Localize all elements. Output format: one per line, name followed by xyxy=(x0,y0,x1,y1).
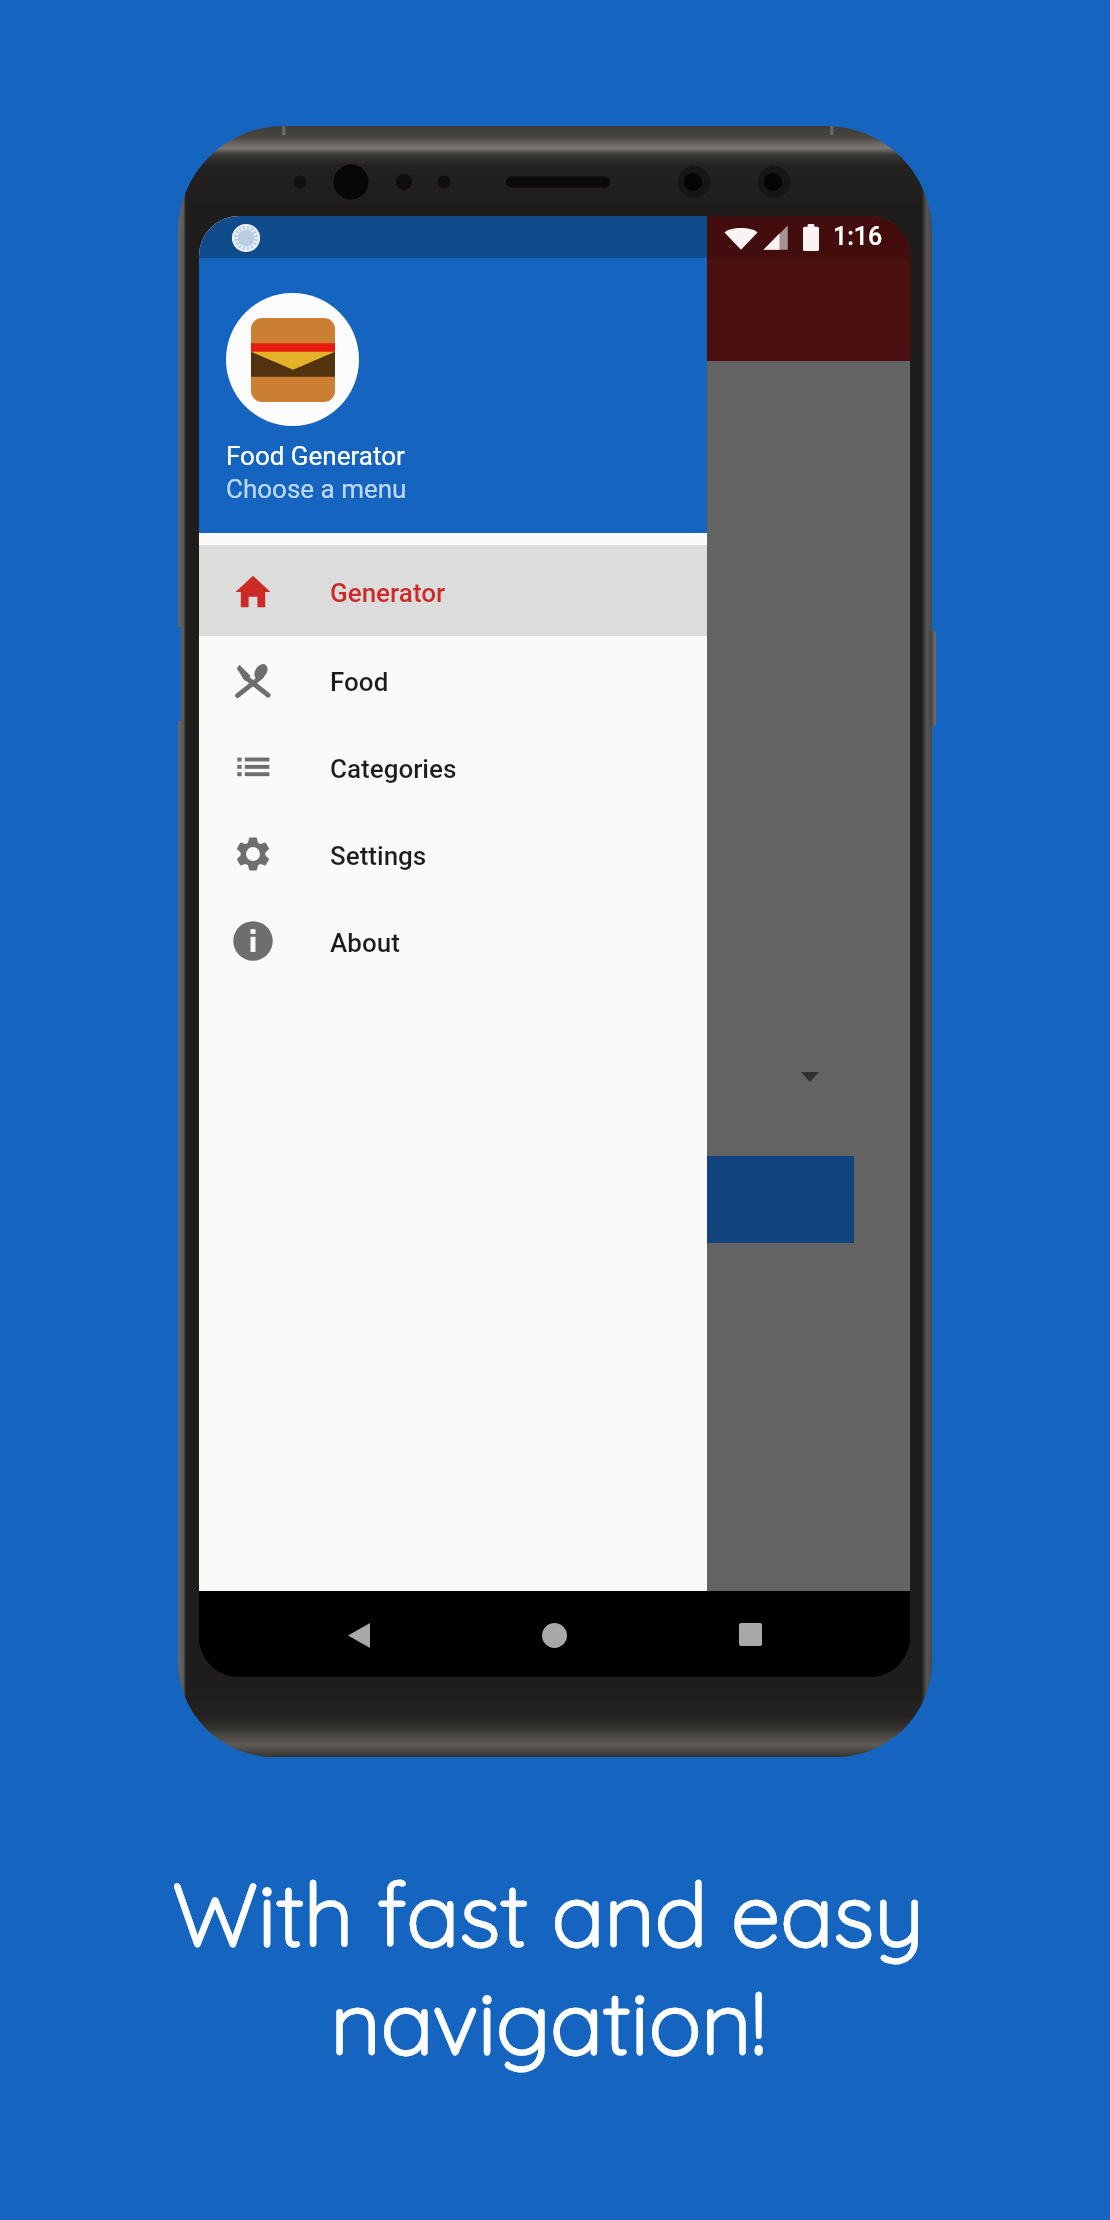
staticText: Categories xyxy=(330,754,457,784)
button[interactable]: About xyxy=(199,897,707,984)
staticText: 1:16 xyxy=(833,222,883,251)
button[interactable]: Home xyxy=(519,1599,589,1671)
staticText: Food xyxy=(330,667,389,697)
button[interactable]: Generator xyxy=(199,545,707,636)
staticText: With fast and easy navigation! xyxy=(172,1858,924,2076)
staticText: Settings xyxy=(330,841,427,871)
button[interactable]: Food xyxy=(199,636,707,723)
staticText: About xyxy=(330,928,400,958)
button[interactable]: Categories xyxy=(199,723,707,810)
button[interactable]: Recents xyxy=(715,1598,785,1670)
button[interactable]: Settings xyxy=(199,810,707,897)
button[interactable]: Back xyxy=(324,1599,394,1671)
staticText: Choose a menu xyxy=(226,474,407,504)
staticText: Generator xyxy=(330,578,446,608)
staticText: Food Generator xyxy=(226,441,405,471)
